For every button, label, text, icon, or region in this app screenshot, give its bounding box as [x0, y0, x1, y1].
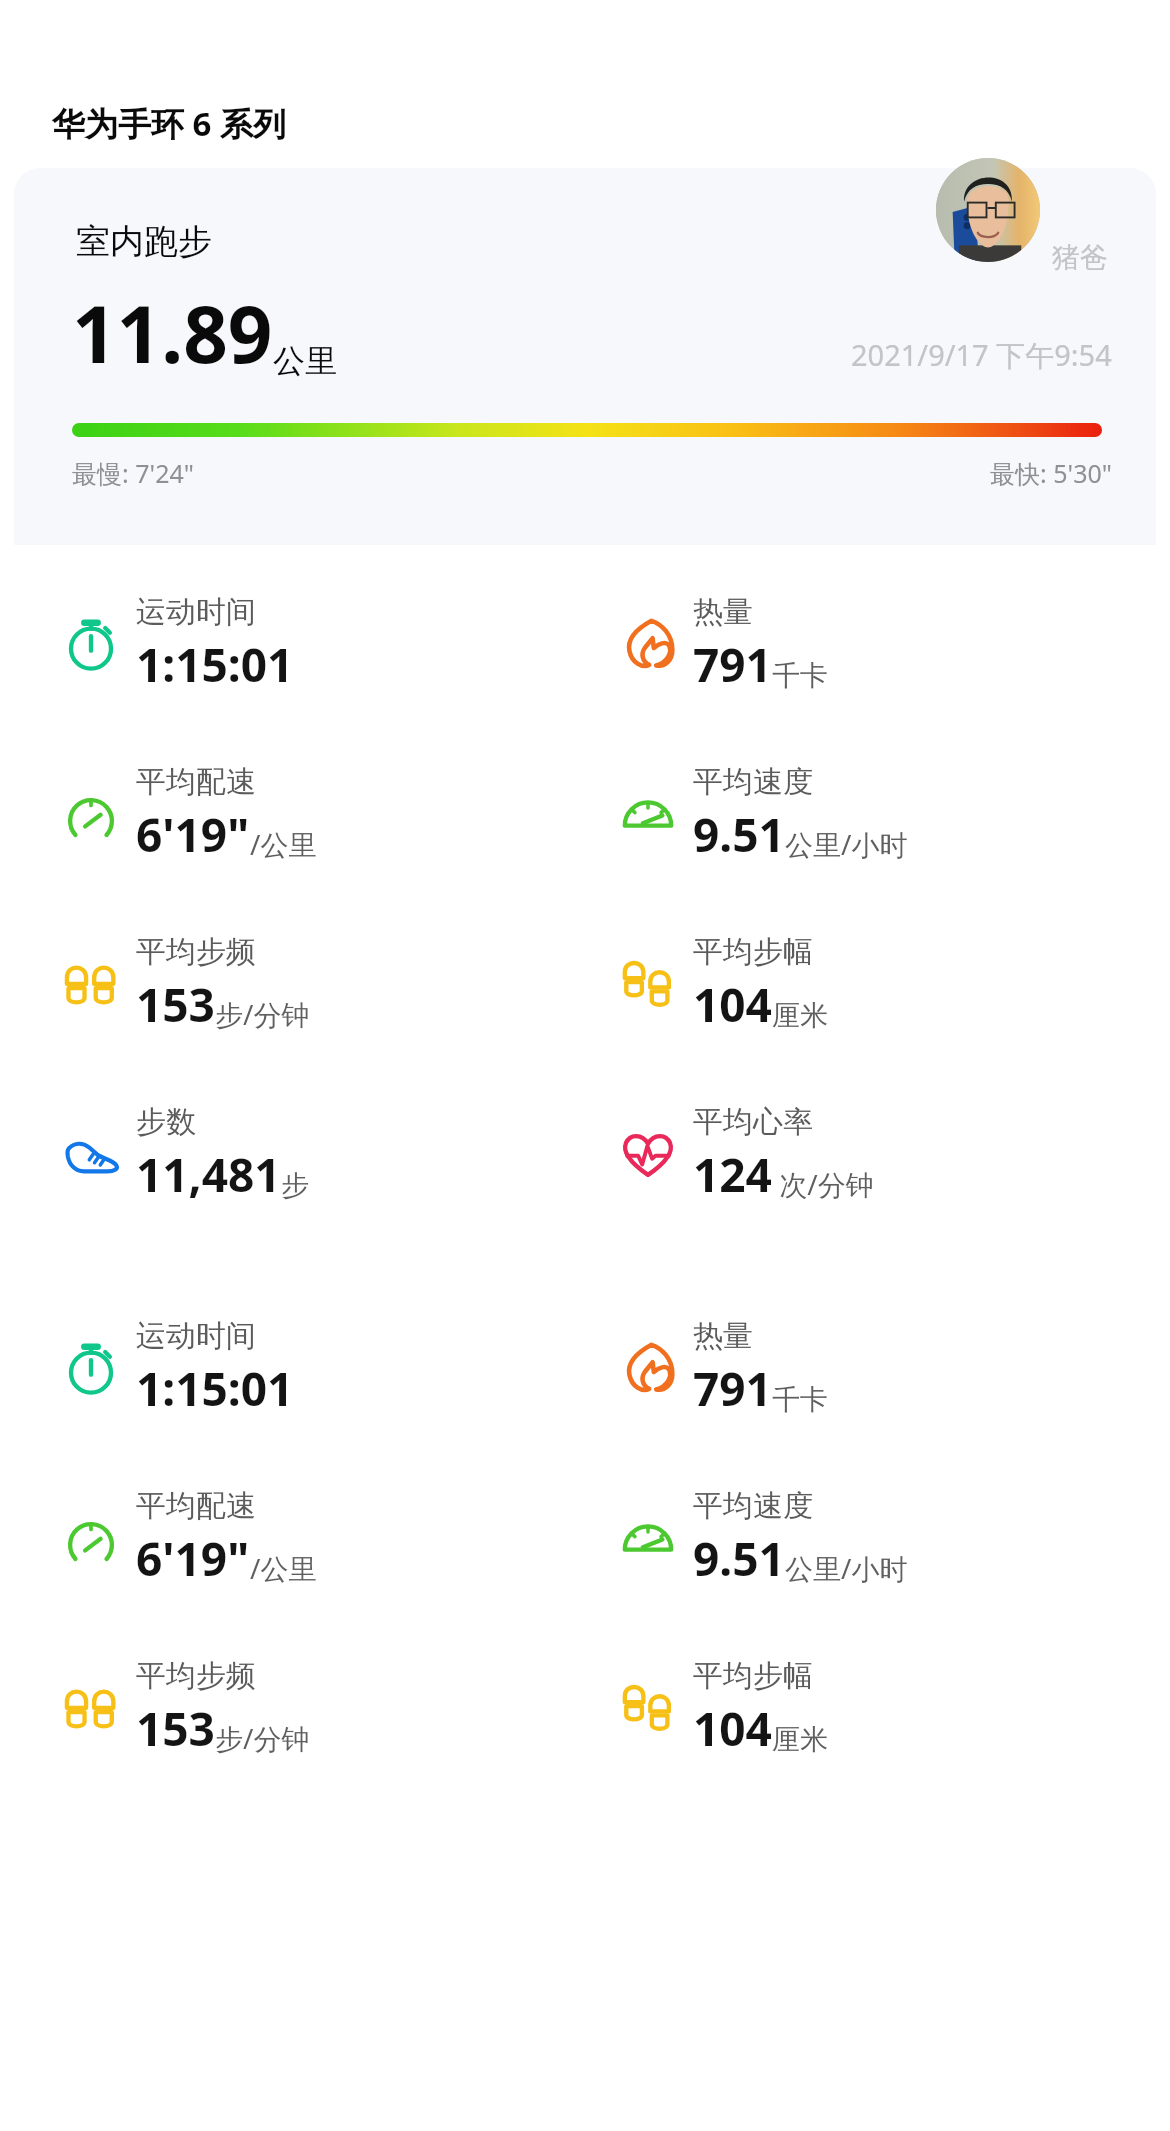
staticText: 猪爸	[1052, 240, 1108, 275]
staticText: 公里	[273, 341, 337, 381]
button[interactable]: 运动时间	[14, 1283, 585, 1453]
button[interactable]: 平均速度	[585, 1453, 1156, 1623]
button[interactable]: 热量	[585, 1283, 1156, 1453]
staticText: 步/分钟	[215, 995, 310, 1033]
button[interactable]: 平均步幅	[585, 899, 1156, 1069]
button[interactable]: 平均配速	[14, 1453, 585, 1623]
staticText: 124	[693, 1143, 772, 1206]
staticText: 153	[136, 1697, 215, 1760]
button[interactable]: 平均步频	[14, 899, 585, 1069]
staticText: 步数	[136, 1103, 196, 1141]
staticText: 运动时间	[136, 593, 256, 631]
staticText: 153	[136, 973, 215, 1036]
button[interactable]: 平均步幅	[585, 1623, 1156, 1793]
staticText: 平均速度	[693, 1487, 813, 1525]
staticText: 室内跑步	[76, 220, 212, 263]
staticText: 千卡	[772, 1382, 828, 1417]
staticText: 步	[281, 1168, 309, 1203]
button[interactable]: 平均步频	[14, 1623, 585, 1793]
staticText: 2021/9/17 下午9:54	[851, 335, 1112, 375]
button[interactable]: 运动时间	[14, 559, 585, 729]
staticText: 平均速度	[693, 763, 813, 801]
staticText: 次/分钟	[772, 1165, 874, 1203]
staticText: 791	[693, 1357, 772, 1420]
button[interactable]: Profile avatar	[936, 158, 1040, 262]
staticText: 最慢: 7'24"	[72, 456, 194, 490]
staticText: 9.51	[693, 1527, 785, 1590]
staticText: 厘米	[772, 1722, 828, 1757]
staticText: 1:15:01	[136, 633, 294, 696]
staticText: 华为手环 6 系列	[52, 101, 287, 146]
staticText: 公里/小时	[785, 1549, 908, 1587]
button[interactable]: 平均心率	[585, 1069, 1156, 1239]
staticText: 791	[693, 633, 772, 696]
staticText: 步/分钟	[215, 1719, 310, 1757]
staticText: 最快: 5'30"	[990, 456, 1112, 490]
button[interactable]: 平均配速	[14, 729, 585, 899]
staticText: 平均配速	[136, 1487, 256, 1525]
staticText: 热量	[693, 593, 753, 631]
staticText: 运动时间	[136, 1317, 256, 1355]
staticText: 104	[693, 1697, 772, 1760]
staticText: 6'19"	[136, 803, 250, 866]
staticText: /公里	[250, 1549, 317, 1587]
staticText: 平均心率	[693, 1103, 813, 1141]
button[interactable]: 热量	[585, 559, 1156, 729]
staticText: 平均步幅	[693, 1657, 813, 1695]
staticText: /公里	[250, 825, 317, 863]
staticText: 公里/小时	[785, 825, 908, 863]
staticText: 1:15:01	[136, 1357, 294, 1420]
staticText: 平均步频	[136, 1657, 256, 1695]
staticText: 平均步频	[136, 933, 256, 971]
staticText: 6'19"	[136, 1527, 250, 1590]
staticText: 11,481	[136, 1143, 281, 1206]
button[interactable]: 平均速度	[585, 729, 1156, 899]
staticText: 厘米	[772, 998, 828, 1033]
staticText: 平均配速	[136, 763, 256, 801]
staticText: 9.51	[693, 803, 785, 866]
staticText: 平均步幅	[693, 933, 813, 971]
staticText: 11.89	[72, 280, 273, 386]
staticText: 104	[693, 973, 772, 1036]
button[interactable]: 步数	[14, 1069, 585, 1239]
staticText: 热量	[693, 1317, 753, 1355]
staticText: 千卡	[772, 658, 828, 693]
